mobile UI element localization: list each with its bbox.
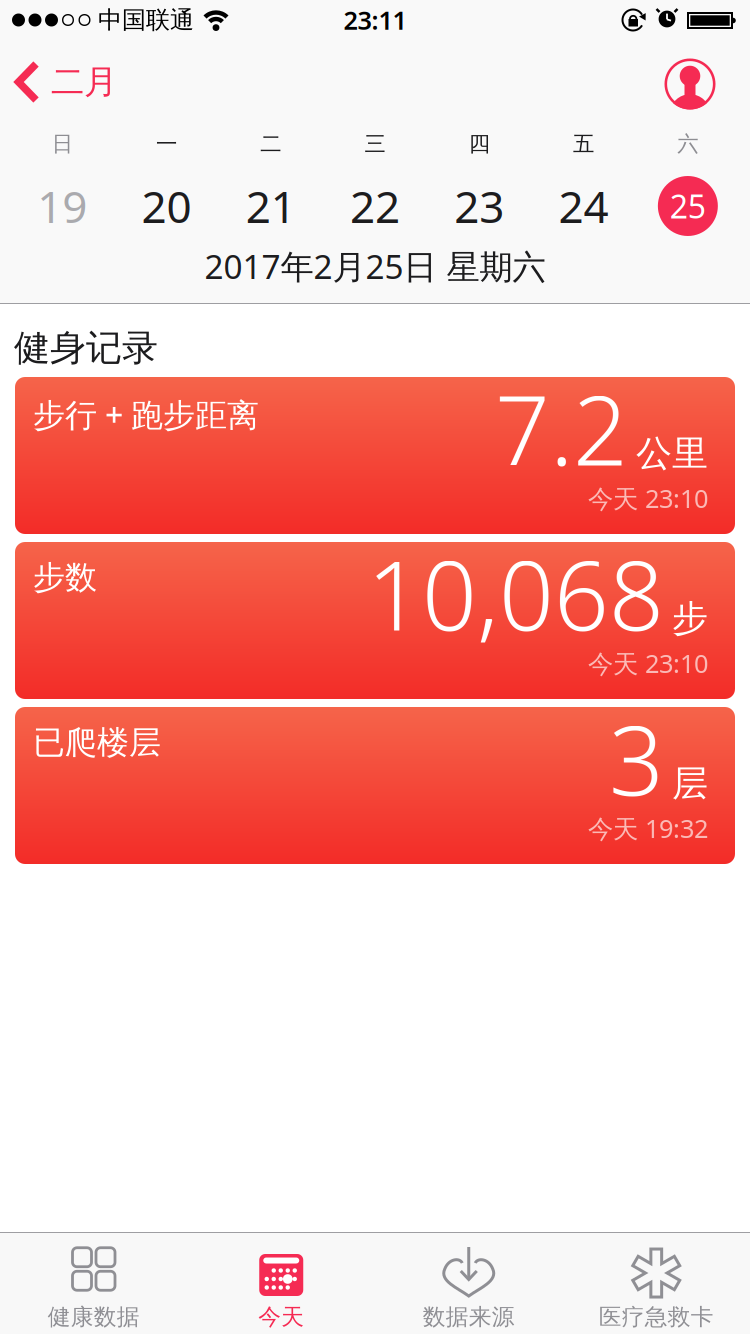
- staticText: 医疗急救卡: [599, 1303, 714, 1331]
- button[interactable]: 24: [551, 173, 617, 239]
- staticText: 日: [52, 131, 73, 157]
- staticText: 7.2: [495, 364, 628, 492]
- staticText: 22: [350, 177, 400, 235]
- staticText: 步: [672, 596, 708, 641]
- button[interactable]: 20: [133, 173, 199, 239]
- staticText: 23: [454, 177, 504, 235]
- staticText: 今天 19:32: [588, 811, 708, 845]
- button[interactable]: 19: [29, 173, 95, 239]
- button[interactable]: 用户资料: [664, 58, 715, 109]
- staticText: 二月: [51, 61, 117, 102]
- button[interactable]: 今天: [187, 1233, 375, 1334]
- staticText: 四: [469, 131, 490, 157]
- staticText: 步行 + 跑步距离: [33, 393, 259, 435]
- staticText: 今天 23:10: [588, 646, 708, 680]
- staticText: 五: [573, 131, 594, 157]
- staticText: 21: [246, 177, 296, 235]
- staticText: 数据来源: [423, 1303, 515, 1331]
- button[interactable]: 22: [342, 173, 408, 239]
- button[interactable]: 已爬楼层: [15, 707, 735, 864]
- staticText: 层: [672, 761, 708, 806]
- button[interactable]: 步行 + 跑步距离: [15, 377, 735, 534]
- staticText: 三: [364, 131, 385, 157]
- staticText: 3: [609, 694, 664, 822]
- staticText: 一: [156, 131, 177, 157]
- button[interactable]: 数据来源: [375, 1233, 562, 1334]
- staticText: 已爬楼层: [33, 723, 161, 762]
- staticText: 中国联通: [98, 5, 194, 35]
- button[interactable]: 23: [446, 173, 512, 239]
- staticText: 19: [37, 177, 87, 235]
- staticText: 25: [670, 185, 706, 227]
- button[interactable]: 医疗急救卡: [562, 1233, 750, 1334]
- button[interactable]: 健康数据: [0, 1233, 187, 1334]
- button[interactable]: 二月: [15, 61, 117, 103]
- staticText: 六: [677, 131, 698, 157]
- button[interactable]: 步数: [15, 542, 735, 699]
- button[interactable]: 25: [655, 173, 721, 239]
- staticText: 今天: [258, 1303, 304, 1331]
- staticText: 健康数据: [48, 1303, 140, 1331]
- staticText: 二: [260, 131, 281, 157]
- staticText: 20: [141, 177, 191, 235]
- staticText: 步数: [33, 558, 97, 597]
- staticText: 公里: [636, 431, 708, 476]
- button[interactable]: 21: [238, 173, 304, 239]
- staticText: 10,068: [367, 529, 664, 657]
- staticText: 2017年2月25日 星期六: [204, 244, 545, 288]
- staticText: 今天 23:10: [588, 481, 708, 515]
- staticText: 健身记录: [14, 326, 158, 370]
- staticText: 24: [559, 177, 609, 235]
- staticText: 23:11: [343, 3, 406, 37]
